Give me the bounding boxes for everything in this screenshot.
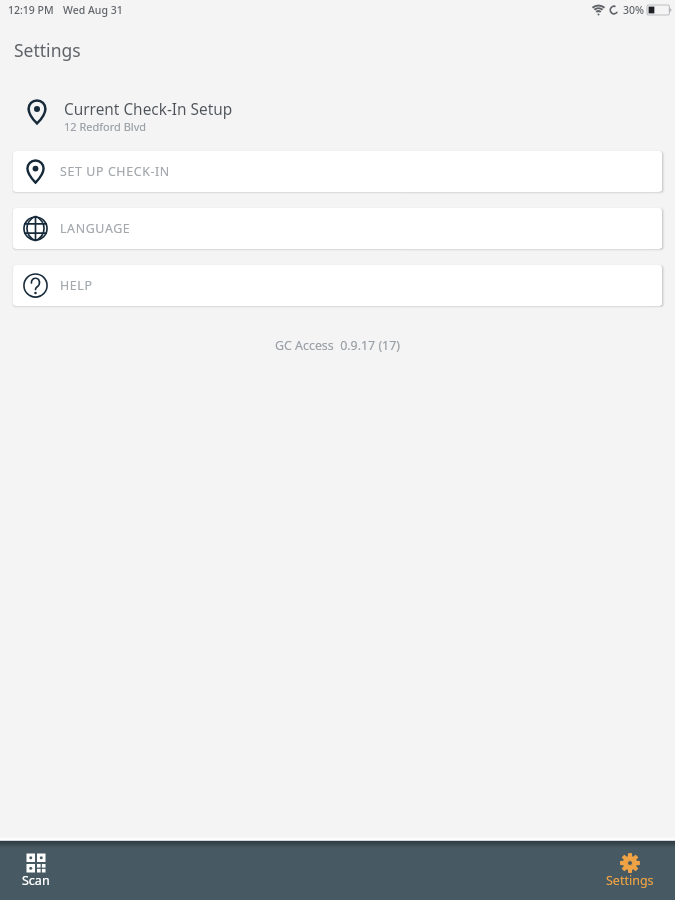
staticText: SET UP CHECK-IN xyxy=(60,163,170,180)
staticText: Settings xyxy=(14,38,81,62)
button[interactable]: Settings xyxy=(594,841,666,900)
button[interactable]: LANGUAGE xyxy=(13,208,662,249)
button[interactable]: Scan xyxy=(0,841,72,900)
staticText: 30% xyxy=(623,3,644,17)
staticText: Wed Aug 31 xyxy=(63,3,123,17)
staticText: Current Check-In Setup xyxy=(64,99,233,120)
staticText: Scan xyxy=(22,872,50,889)
staticText: GC Access 0.9.17 (17) xyxy=(0,337,675,354)
staticText: Settings xyxy=(606,872,654,889)
staticText: 12:19 PM xyxy=(8,3,54,17)
staticText: LANGUAGE xyxy=(60,220,131,237)
button[interactable]: SET UP CHECK-IN xyxy=(13,151,662,192)
button[interactable]: HELP xyxy=(13,265,662,306)
button[interactable]: Current Check-In Setup xyxy=(0,99,675,135)
staticText: HELP xyxy=(60,277,93,294)
staticText: 12 Redford Blvd xyxy=(64,119,146,134)
